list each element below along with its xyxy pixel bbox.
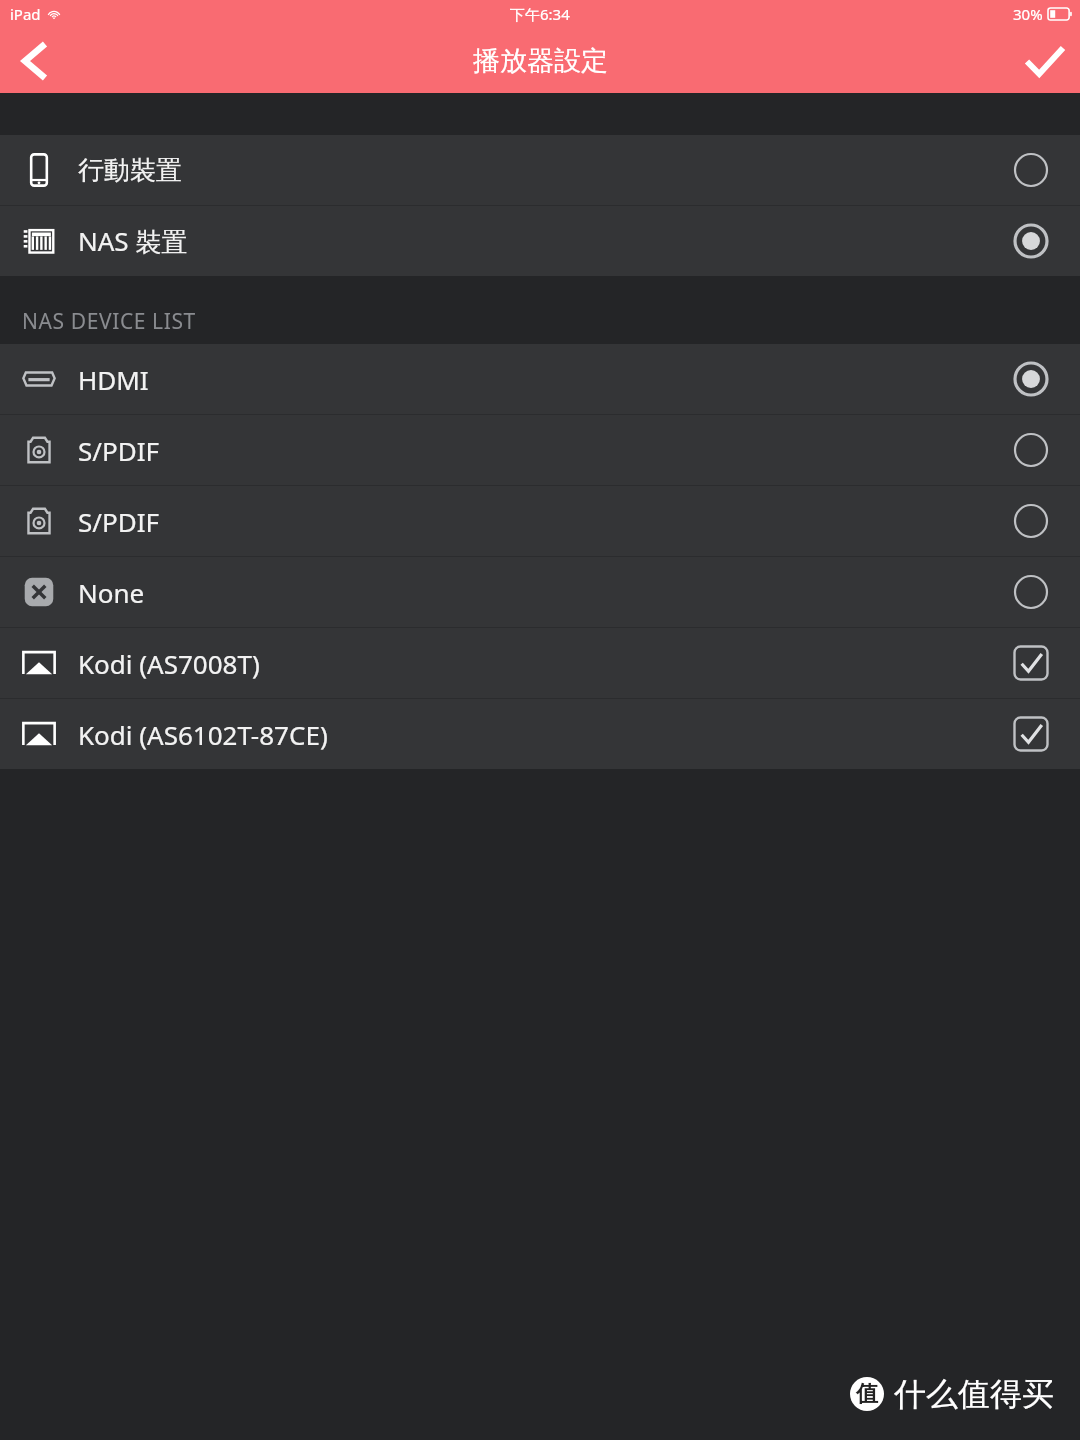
button[interactable]: S/PDIF [0,486,1080,556]
button[interactable]: NAS 裝置 [0,206,1080,276]
button[interactable]: Back [0,28,70,93]
button[interactable]: None [0,557,1080,627]
staticText: HDMI [78,362,982,397]
staticText: NAS 裝置 [78,223,982,259]
button[interactable]: Confirm [1010,28,1080,93]
button[interactable]: HDMI [0,344,1080,414]
staticText: 行動裝置 [78,154,982,187]
button[interactable]: Kodi (AS6102T-87CE) [0,699,1080,769]
button[interactable]: 行動裝置 [0,135,1080,205]
button[interactable]: S/PDIF [0,415,1080,485]
staticText: Kodi (AS7008T) [78,646,982,681]
staticText: iPad [10,4,41,24]
staticText: S/PDIF [78,504,982,539]
staticText: S/PDIF [78,433,982,468]
staticText: 值 [856,1380,878,1408]
staticText: 30% [1013,4,1043,24]
staticText: 下午6:34 [510,4,570,24]
staticText: NAS DEVICE LIST [22,307,196,336]
staticText: 什么值得买 [894,1374,1054,1414]
staticText: None [78,575,982,610]
staticText: 播放器設定 [473,44,608,78]
staticText: Kodi (AS6102T-87CE) [78,717,982,752]
button[interactable]: Kodi (AS7008T) [0,628,1080,698]
